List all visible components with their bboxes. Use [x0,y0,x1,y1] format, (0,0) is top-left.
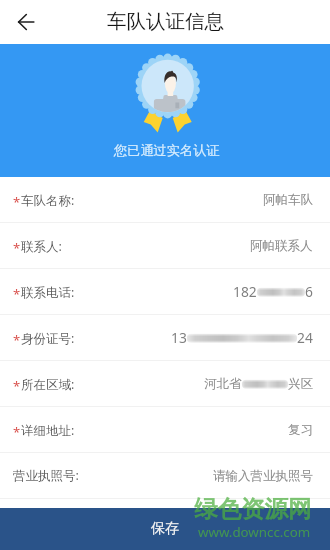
button[interactable]: * [0,407,330,452]
staticText: 车队名称: [21,192,75,209]
button[interactable]: * [0,177,330,222]
staticText: 绿色资源网 [194,494,312,524]
button[interactable]: 保存 [0,508,330,550]
staticText: 营业执照号: [13,467,79,484]
button[interactable]: Back [11,7,41,37]
staticText: 保存 [151,520,179,538]
staticText: 24 [297,328,313,347]
staticText: * [13,377,21,395]
staticText: 身份证号: [21,330,75,347]
staticText: * [13,285,21,303]
button[interactable]: 营业执照号: [0,453,330,498]
staticText: 详细地址: [21,422,75,439]
staticText: * [13,331,21,349]
staticText: 联系电话: [21,284,75,301]
button[interactable]: * [0,361,330,406]
staticText: 河北省 [204,376,242,392]
staticText: 所在区域: [21,376,75,393]
staticText: 车队认证信息 [107,9,224,34]
staticText: * [13,239,21,257]
staticText: * [13,193,21,211]
staticText: 兴区 [288,376,313,392]
staticText: 请输入营业执照号 [213,468,313,484]
button[interactable]: * [0,269,330,314]
staticText: 阿帕车队 [263,192,313,208]
button[interactable]: * [0,315,330,360]
button[interactable]: * [0,223,330,268]
staticText: 您已通过实名认证 [114,142,220,159]
staticText: www.downcc.com [198,523,311,541]
staticText: 联系人: [21,238,62,255]
staticText: 182 [233,282,257,301]
staticText: 阿帕联系人 [250,238,313,254]
staticText: * [13,423,21,441]
staticText: 13 [171,328,187,347]
staticText: 复习 [288,422,313,438]
staticText: 6 [305,282,313,301]
